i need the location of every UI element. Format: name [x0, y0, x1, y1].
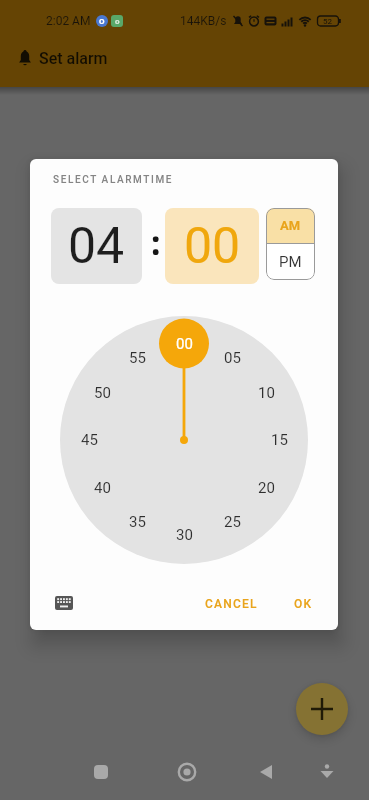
staticText: SELECT ALARMTIME	[53, 174, 174, 186]
button[interactable]	[84, 755, 118, 789]
staticText: 30	[176, 526, 193, 544]
staticText: 25	[224, 513, 241, 531]
staticText: AM	[280, 218, 301, 233]
staticText: 2:02 AM	[46, 14, 91, 28]
button[interactable]: PM	[266, 244, 315, 280]
staticText: PM	[279, 253, 302, 271]
button[interactable]	[250, 755, 284, 789]
staticText: 45	[81, 431, 98, 449]
staticText: o	[115, 17, 120, 26]
button[interactable]: 00	[165, 208, 259, 284]
button[interactable]	[310, 755, 344, 789]
button[interactable]	[170, 755, 204, 789]
staticText: 00	[184, 217, 241, 276]
staticText: 15	[271, 431, 288, 449]
staticText: 55	[129, 349, 146, 367]
staticText: CANCEL	[205, 597, 258, 611]
button[interactable]: OK	[282, 591, 324, 617]
staticText: 40	[94, 479, 111, 497]
staticText: 52	[323, 17, 333, 26]
staticText: Set alarm	[39, 49, 108, 68]
staticText: O	[99, 17, 105, 26]
button[interactable]	[50, 590, 78, 616]
staticText: 00	[176, 335, 193, 353]
staticText: 20	[258, 479, 275, 497]
button[interactable]	[296, 683, 348, 735]
button[interactable]: 04	[51, 208, 142, 284]
staticText: 04	[68, 217, 125, 276]
staticText: 50	[94, 384, 111, 402]
staticText: 05	[224, 349, 241, 367]
button[interactable]: AM	[266, 208, 315, 243]
staticText: 35	[129, 513, 146, 531]
staticText: OK	[294, 597, 313, 611]
button[interactable]: CANCEL	[196, 591, 266, 617]
staticText: 144KB/s	[180, 14, 227, 28]
staticText: 10	[258, 384, 275, 402]
